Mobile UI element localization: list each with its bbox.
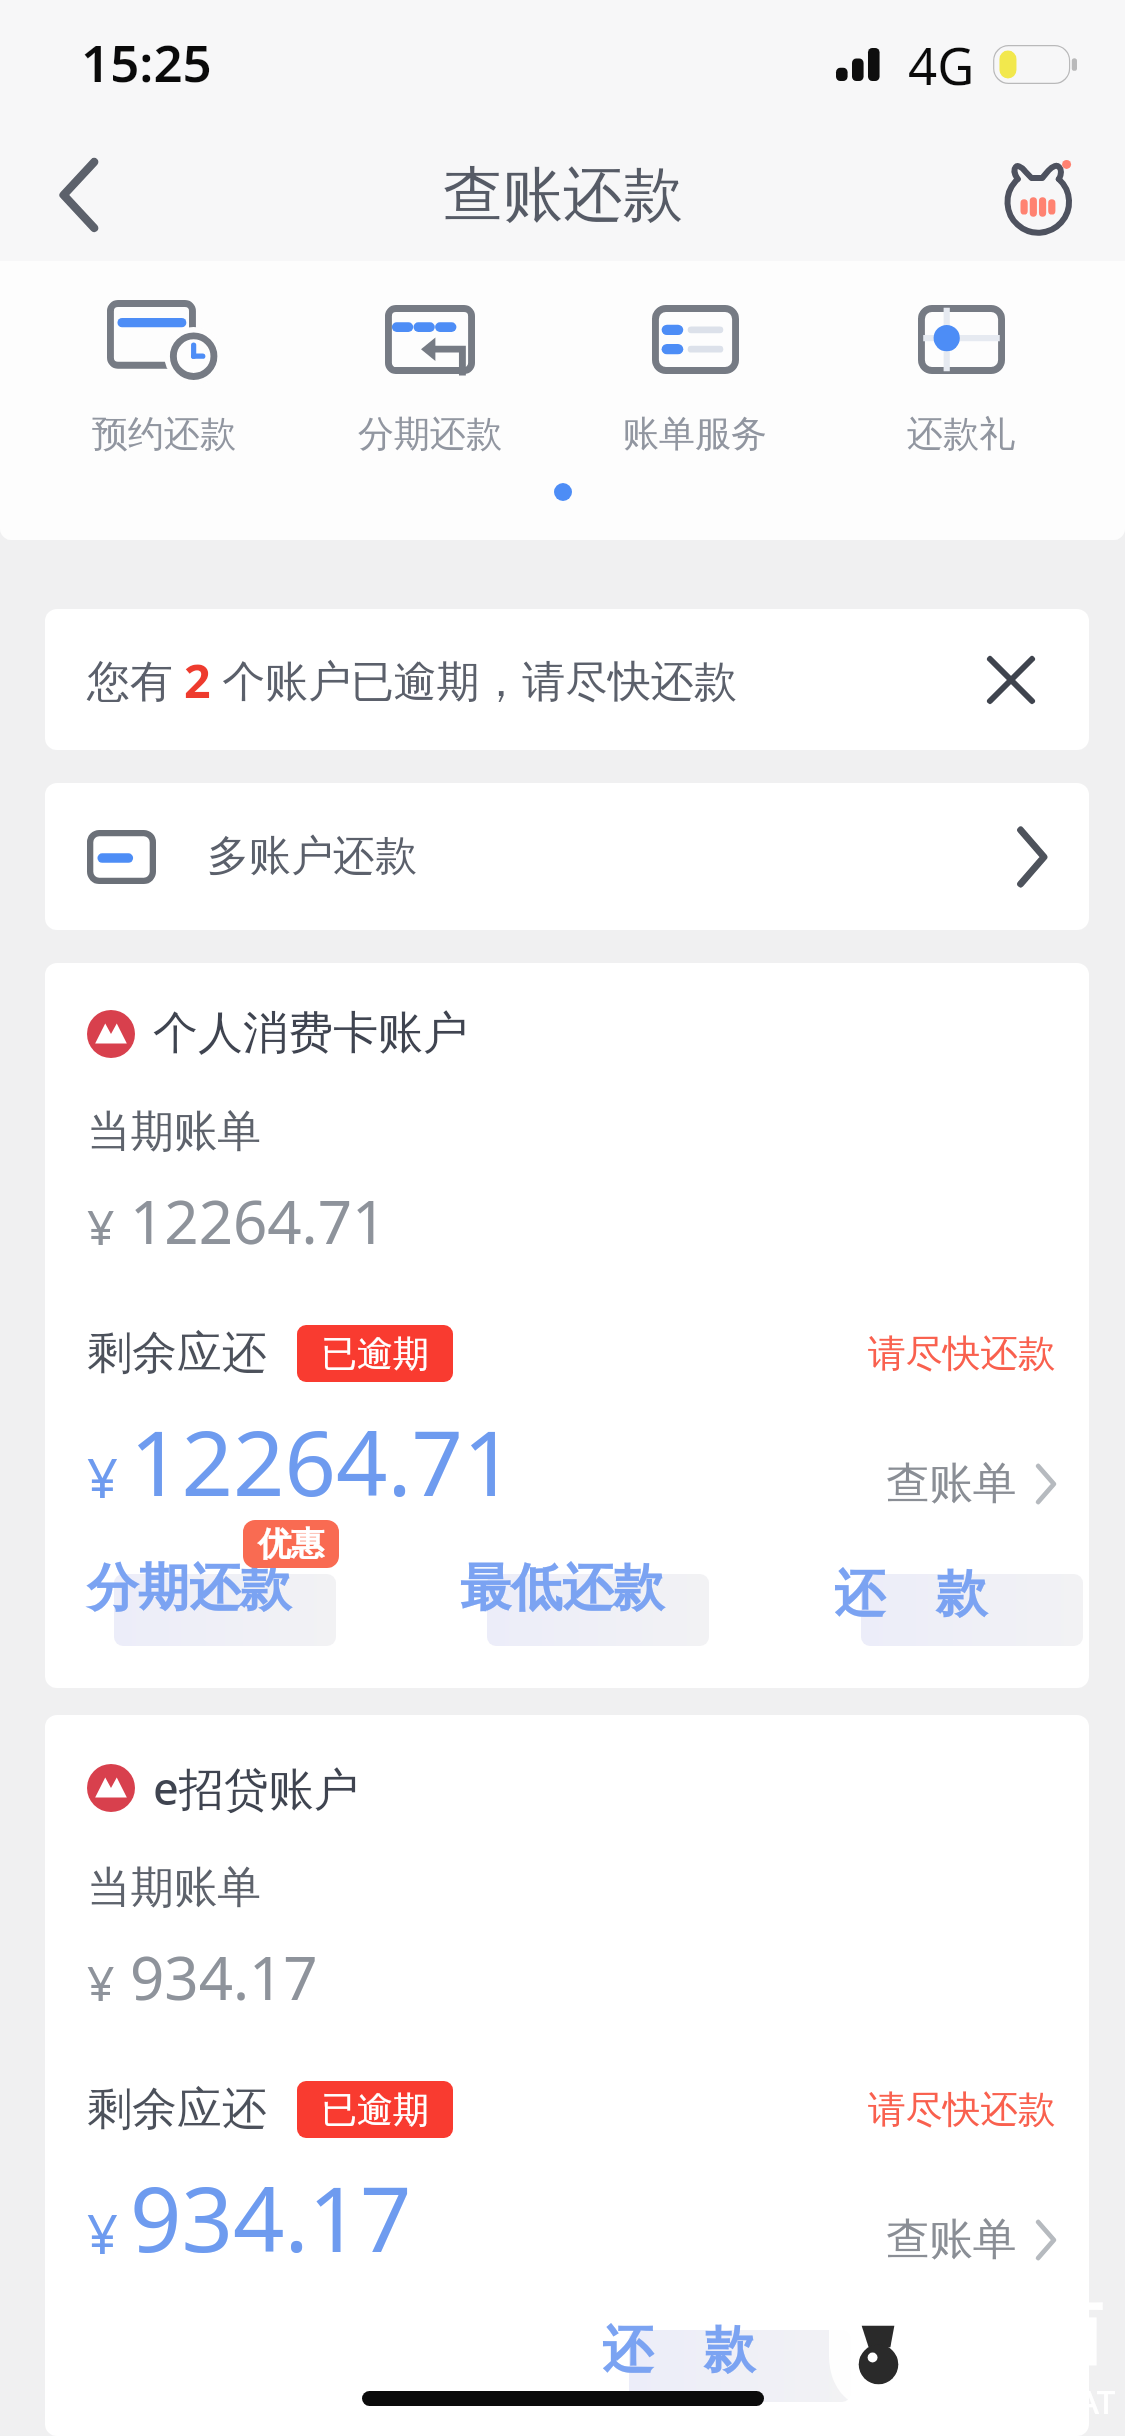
staticText: 您有 [87,650,184,709]
staticText: 4G [908,30,975,99]
staticText: 还 款 [834,1556,987,1626]
staticText: 934.17 [130,1936,318,2018]
staticText: 934.17 [130,2156,412,2279]
staticText: 当期账单 [87,1104,261,1159]
staticText: 请尽快还款 [868,1330,1056,1377]
button[interactable] [629,2330,851,2402]
button[interactable]: Back [12,129,144,261]
staticText: 当期账单 [87,1860,261,1915]
staticText: ¥ [87,1950,115,2015]
staticText: 已逾期 [321,2087,429,2132]
staticText: 个人消费卡账户 [153,1005,468,1062]
button[interactable]: 还款礼 [841,300,1081,456]
staticText: 分期还款 [358,411,502,456]
staticText: 查账单 [886,2212,1017,2267]
staticText: 黑猫 [946,2281,1102,2379]
button[interactable] [114,1574,336,1646]
staticText: 查账单 [886,1456,1017,1511]
button[interactable] [487,1574,709,1646]
staticText: 还 款 [602,2312,755,2382]
staticText: 剩余应还 [87,2081,267,2138]
button[interactable]: 查账单 [886,1456,1056,1523]
staticText: 12264.71 [130,1180,387,1262]
button[interactable]: Customer service [978,132,1104,258]
button[interactable]: Close [972,641,1050,719]
button[interactable]: 多账户还款 [45,783,1089,930]
staticText: e招贷账户 [153,1757,359,1818]
button[interactable]: 分期还款 [310,300,550,456]
staticText: 2 [184,648,211,711]
button[interactable] [861,1574,1083,1646]
button[interactable]: 查账单 [886,2212,1056,2279]
staticText: BLACK CAT [946,2379,1116,2424]
button[interactable]: 您有 [45,609,1089,750]
staticText: 剩余应还 [87,1325,267,1382]
staticText: 最低还款 [460,1556,664,1620]
staticText: 还款礼 [907,411,1015,456]
staticText: 请尽快还款 [868,2086,1056,2133]
staticText: 个账户已逾期，请尽快还款 [211,650,737,709]
staticText: ¥ [87,1440,118,1514]
staticText: ¥ [87,2196,118,2270]
staticText: ¥ [87,1194,115,1259]
staticText: 预约还款 [92,411,236,456]
staticText: 12264.71 [130,1400,515,1523]
button[interactable]: 预约还款 [44,300,284,456]
staticText: 已逾期 [321,1331,429,1376]
button[interactable]: 账单服务 [575,300,815,456]
staticText: 分期还款 [87,1556,291,1620]
staticText: 查账还款 [443,157,683,233]
staticText: 账单服务 [623,411,767,456]
staticText: 多账户还款 [207,830,1017,883]
staticText: 优惠 [258,1523,324,1565]
staticText: 15:25 [81,27,212,96]
